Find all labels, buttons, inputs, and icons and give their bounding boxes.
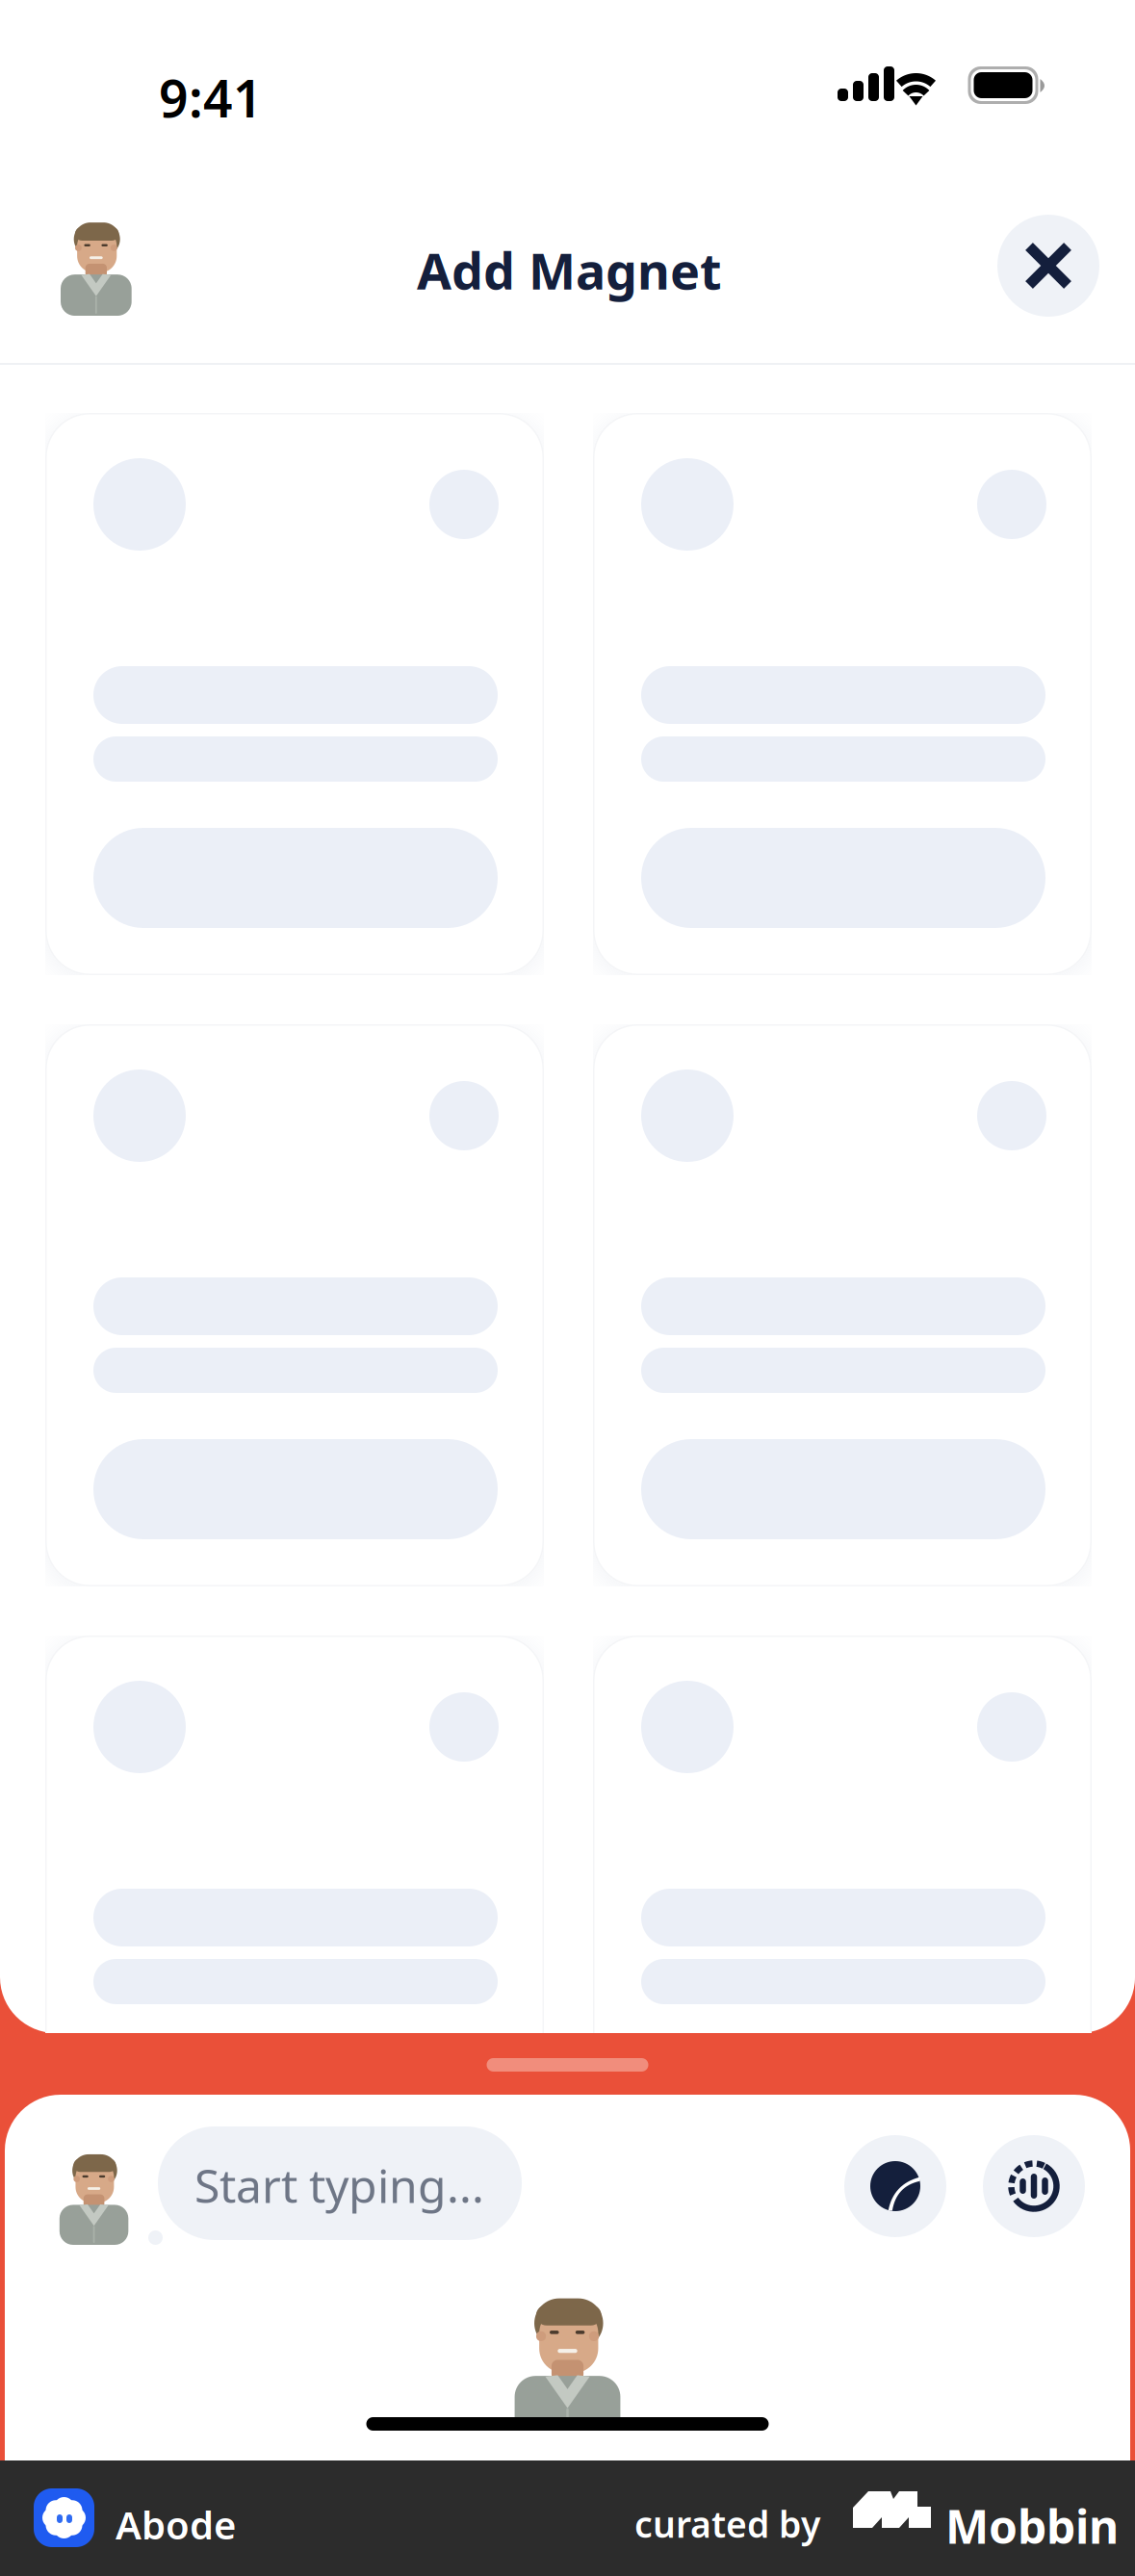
staticText: Start typing... — [194, 2154, 484, 2216]
staticText: Abode — [116, 2499, 236, 2550]
staticText: Mobbin — [945, 2495, 1119, 2556]
staticText: curated by — [634, 2500, 820, 2548]
staticText: 9:41 — [159, 64, 263, 132]
button[interactable]: Close — [997, 215, 1099, 317]
staticText: Add Magnet — [417, 237, 722, 303]
button[interactable]: Voice message — [983, 2135, 1085, 2237]
button[interactable]: Magnet — [844, 2135, 946, 2237]
